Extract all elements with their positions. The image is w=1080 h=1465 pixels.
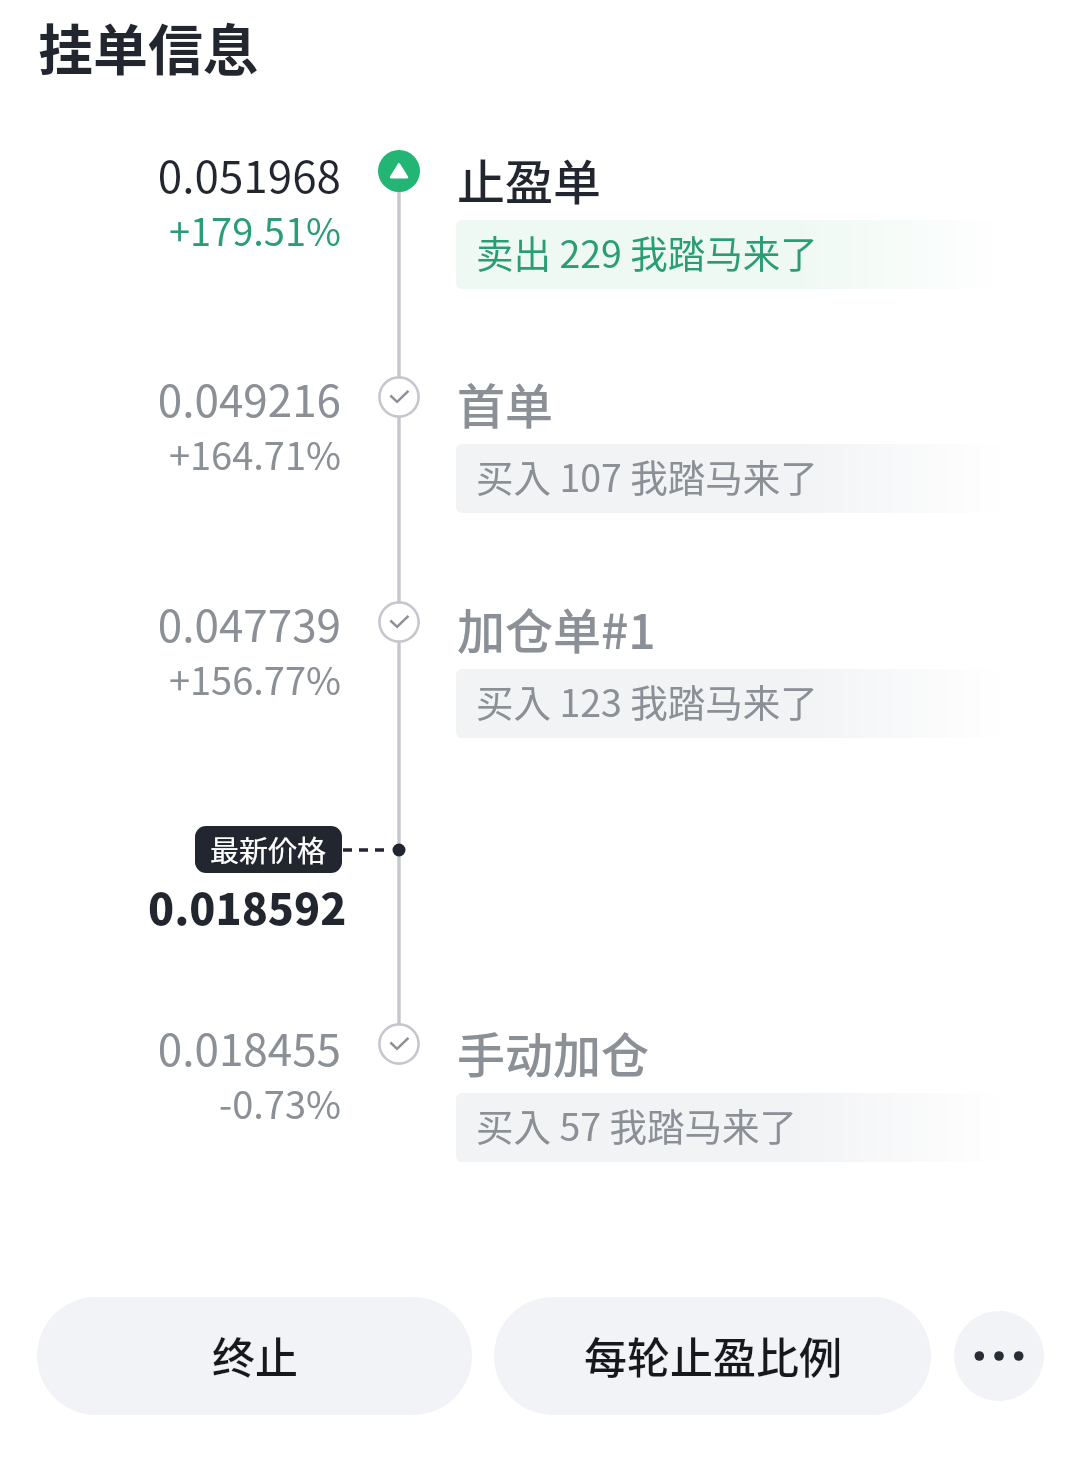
button[interactable]: Filled order [378,1023,420,1065]
staticText: 手动加仓 [457,1017,650,1087]
button[interactable]: Take profit order [378,150,420,192]
staticText: 加仓单#1 [457,593,656,663]
staticText: 买入 57 我踏马来了 [476,1097,797,1151]
staticText: -0.73% [218,1075,341,1130]
button[interactable]: More options [954,1311,1044,1401]
staticText: 0.018592 [148,875,347,937]
button[interactable]: 最新价格 [195,826,342,873]
staticText: 首单 [457,368,554,438]
staticText: +156.77% [168,651,341,706]
button[interactable]: Filled order [378,376,420,418]
staticText: 买入 123 我踏马来了 [476,673,818,727]
staticText: 每轮止盈比例 [584,1324,842,1386]
staticText: 止盈单 [457,144,602,214]
staticText: 0.049216 [157,366,341,430]
staticText: 卖出 229 我踏马来了 [476,224,818,278]
button[interactable]: 终止 [37,1297,472,1415]
button[interactable]: 买入 123 我踏马来了 [456,669,1008,738]
staticText: 最新价格 [210,828,327,870]
staticText: 终止 [212,1324,298,1386]
staticText: 买入 107 我踏马来了 [476,448,818,502]
staticText: 挂单信息 [38,6,259,86]
staticText: +179.51% [168,202,341,257]
staticText: +164.71% [168,426,341,481]
button[interactable]: 买入 107 我踏马来了 [456,444,1008,513]
button[interactable]: Filled order [378,601,420,643]
staticText: 0.047739 [157,591,341,655]
button[interactable]: 卖出 229 我踏马来了 [456,220,1008,289]
staticText: 0.051968 [157,142,341,206]
button[interactable]: 每轮止盈比例 [494,1297,931,1415]
button[interactable]: 买入 57 我踏马来了 [456,1093,1008,1162]
staticText: 0.018455 [157,1015,341,1079]
